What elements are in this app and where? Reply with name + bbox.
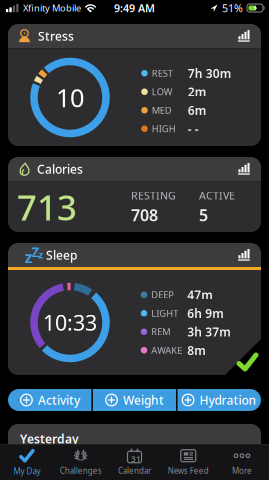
staticText: - - — [188, 121, 199, 137]
staticText: 708 — [131, 204, 158, 226]
staticText: z — [24, 246, 32, 268]
staticText: 31 — [131, 454, 141, 464]
staticText: DEEP — [151, 289, 174, 301]
button[interactable]: Activity — [8, 389, 91, 411]
staticText: More — [232, 465, 252, 476]
staticText: REST — [152, 67, 173, 79]
staticText: 6h 9m — [187, 305, 224, 321]
staticText: Yesterday — [20, 431, 79, 447]
button[interactable]: Yesterday — [8, 424, 261, 480]
button[interactable]: My Day — [0, 445, 54, 479]
staticText: LOW — [152, 86, 173, 98]
staticText: Stress — [38, 28, 74, 44]
staticText: HIGH — [152, 123, 176, 135]
button[interactable]: Hydration — [178, 389, 261, 411]
staticText: Z — [31, 243, 39, 261]
staticText: LIGHT — [151, 307, 178, 319]
staticText: 8m — [187, 342, 206, 358]
staticText: 51% — [222, 1, 243, 15]
button[interactable]: Challenges — [54, 445, 108, 479]
button[interactable]: Stress — [8, 24, 261, 146]
staticText: 47m — [187, 287, 213, 303]
staticText: Activity — [38, 392, 80, 408]
staticText: Sleep — [46, 247, 77, 263]
staticText: ACTIVE — [199, 188, 235, 202]
staticText: 2m — [188, 84, 207, 100]
staticText: 3h 37m — [187, 324, 231, 340]
button[interactable]: z — [8, 243, 261, 375]
staticText: Xfinity Mobile — [23, 2, 81, 14]
staticText: Hydration — [200, 392, 257, 408]
staticText: z — [38, 247, 43, 262]
button[interactable]: History chart — [238, 163, 250, 175]
staticText: AWAKE — [151, 344, 182, 356]
button[interactable]: News Feed — [161, 445, 215, 479]
staticText: REM — [151, 326, 170, 338]
button[interactable]: Weight — [93, 389, 176, 411]
staticText: 713 — [17, 184, 77, 230]
staticText: Weight — [123, 392, 164, 408]
staticText: Calories — [37, 161, 83, 177]
staticText: MED — [152, 104, 172, 116]
button[interactable]: 31 — [108, 445, 161, 479]
staticText: RESTING — [131, 188, 176, 202]
staticText: Calendar — [118, 465, 151, 476]
staticText: 10 — [56, 81, 84, 114]
button[interactable]: History chart — [238, 30, 250, 42]
staticText: My Day — [13, 466, 40, 476]
staticText: News Feed — [168, 465, 209, 476]
staticText: 10:33 — [43, 308, 97, 337]
button[interactable]: History chart — [238, 249, 250, 261]
button[interactable]: Calories — [8, 157, 261, 232]
staticText: 5 — [199, 204, 208, 226]
staticText: 6m — [188, 102, 207, 118]
staticText: 7h 30m — [188, 65, 232, 81]
staticText: 9:49 AM — [114, 1, 155, 15]
staticText: Challenges — [60, 465, 102, 476]
button[interactable]: More — [215, 445, 269, 479]
